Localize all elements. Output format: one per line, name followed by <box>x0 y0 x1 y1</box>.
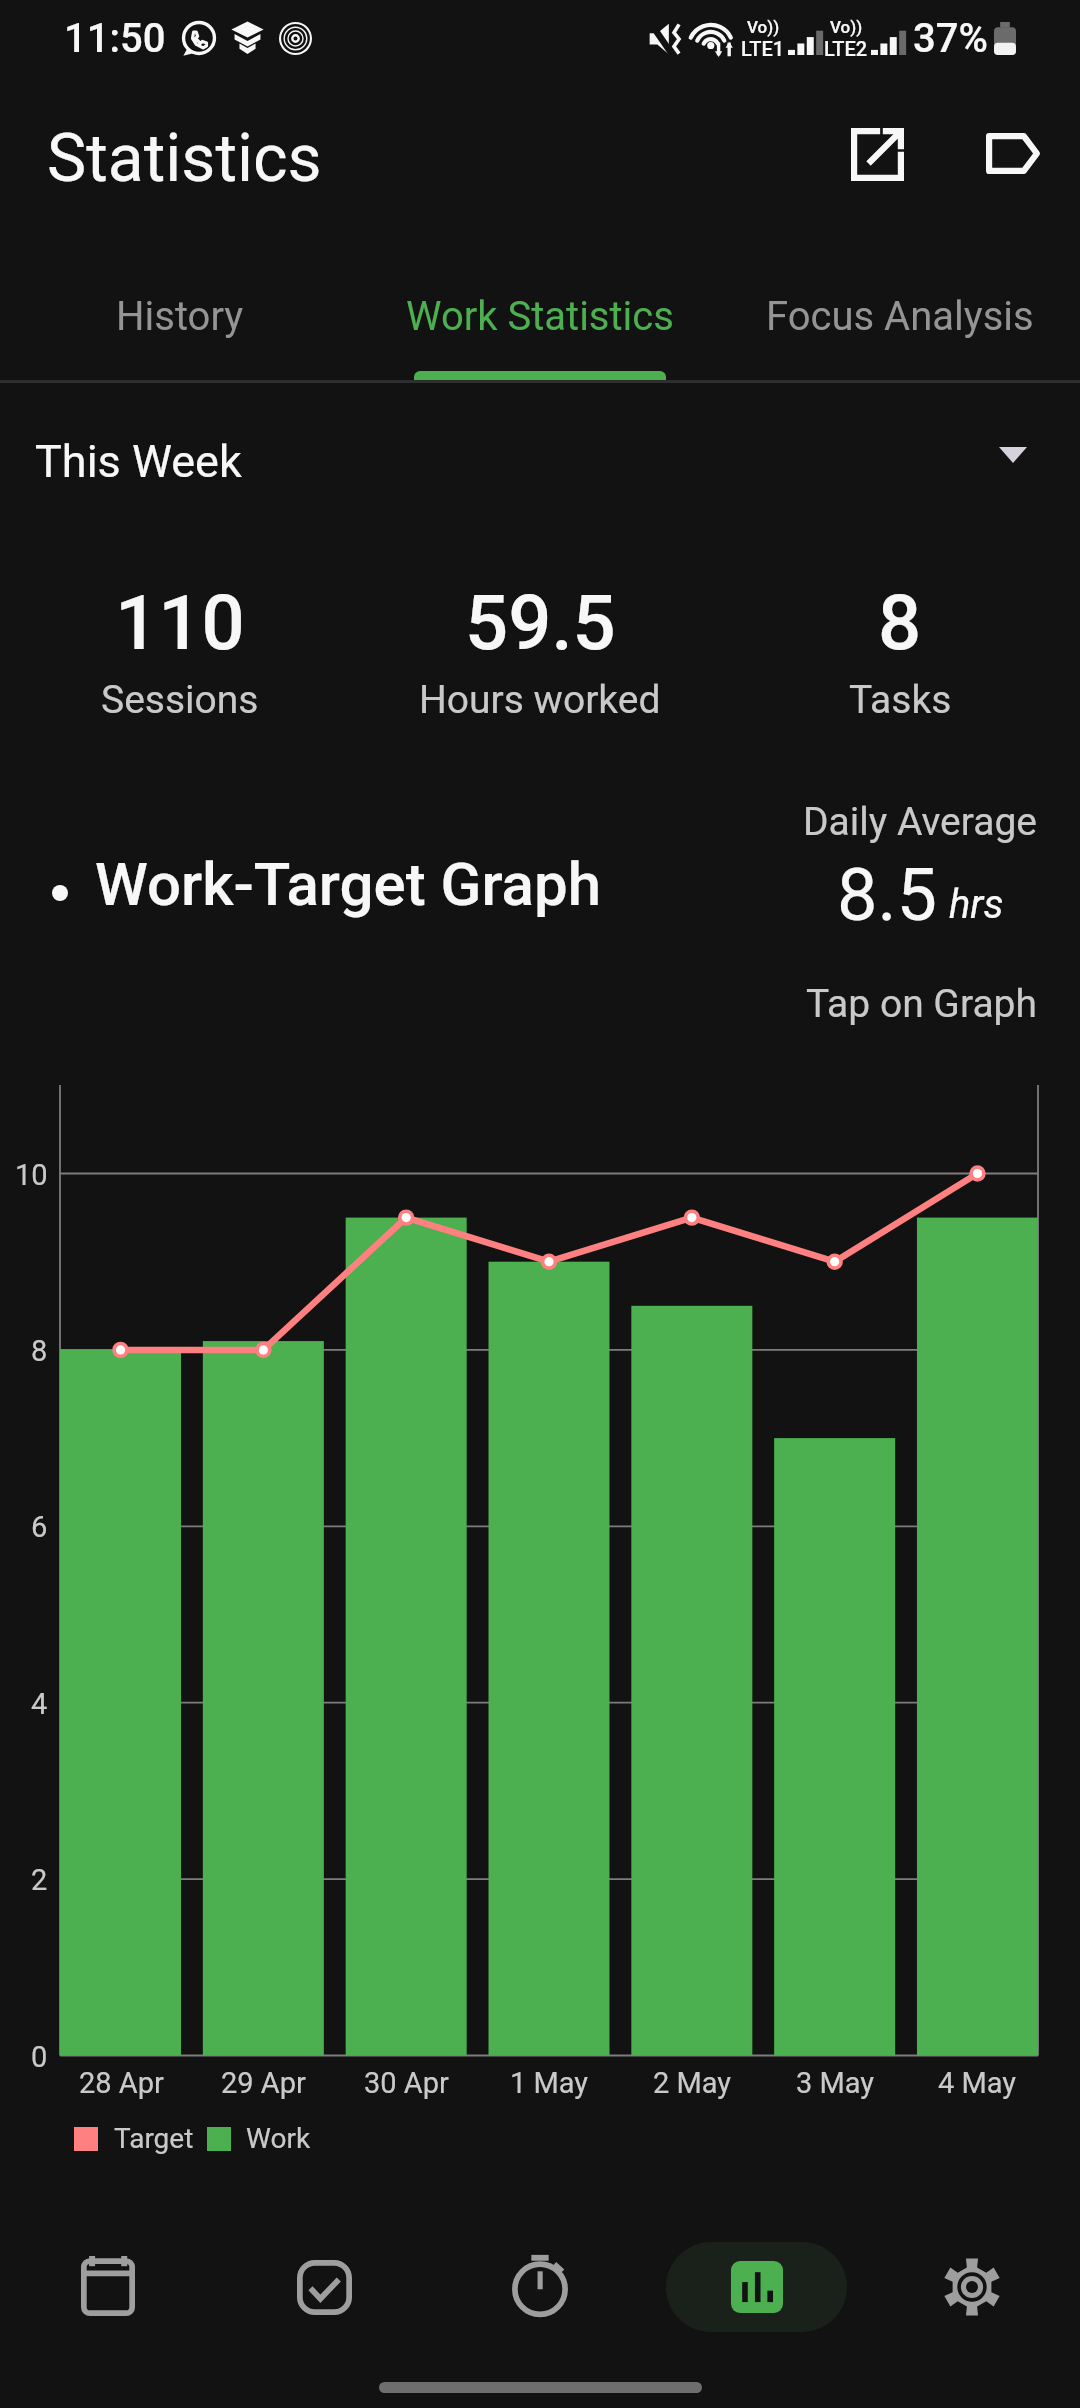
staticText: 11:50 <box>64 15 166 62</box>
button[interactable]: Focus Analysis <box>720 264 1080 384</box>
staticText: 1 May <box>510 2066 589 2100</box>
staticText: Target <box>114 2122 194 2155</box>
staticText: Work Statistics <box>406 293 674 340</box>
staticText: Work-Target Graph <box>95 849 601 919</box>
button[interactable]: Work Statistics <box>360 264 720 384</box>
button[interactable]: Work target graph <box>60 1085 1038 2056</box>
button[interactable]: Settings <box>864 2212 1080 2362</box>
button[interactable]: Open in new window <box>821 98 933 210</box>
staticText: 37% <box>913 15 988 62</box>
staticText: Work <box>246 2122 311 2155</box>
staticText: 110 <box>115 578 245 667</box>
button[interactable]: Label <box>957 97 1069 209</box>
staticText: Statistics <box>47 120 322 197</box>
staticText: 4 May <box>938 2066 1017 2100</box>
staticText: 29 Apr <box>221 2066 306 2100</box>
staticText: Tap on Graph <box>806 981 1037 1027</box>
staticText: 10 <box>15 1158 48 1192</box>
staticText: Tasks <box>849 677 952 723</box>
staticText: 8.5 <box>837 853 937 937</box>
button[interactable]: Calendar <box>0 2212 216 2362</box>
staticText: 30 Apr <box>364 2066 449 2100</box>
staticText: 59.5 <box>465 578 616 667</box>
staticText: LTE1 <box>741 37 785 60</box>
staticText: 8 <box>878 578 922 667</box>
staticText: 4 <box>31 1687 48 1721</box>
button[interactable]: Tasks <box>216 2212 432 2362</box>
staticText: 28 Apr <box>79 2066 164 2100</box>
button[interactable]: This Week <box>0 404 1080 504</box>
staticText: Daily Average <box>803 799 1037 845</box>
button[interactable]: Statistics <box>648 2212 864 2362</box>
staticText: 6 <box>31 1510 48 1544</box>
staticText: Hours worked <box>419 677 661 723</box>
staticText: History <box>116 293 244 340</box>
staticText: 2 <box>31 1863 48 1897</box>
staticText: 8 <box>31 1334 48 1368</box>
staticText: Vo)) <box>830 17 863 37</box>
staticText: LTE2 <box>824 37 868 60</box>
staticText: 3 May <box>796 2066 875 2100</box>
staticText: 2 May <box>653 2066 732 2100</box>
staticText: Sessions <box>101 677 259 723</box>
staticText: 0 <box>31 2040 48 2074</box>
staticText: Focus Analysis <box>766 293 1034 340</box>
staticText: hrs <box>949 881 1004 928</box>
button[interactable]: History <box>0 264 360 384</box>
staticText: Vo)) <box>747 17 780 37</box>
button[interactable]: Timer <box>432 2212 648 2362</box>
staticText: This Week <box>35 435 242 488</box>
